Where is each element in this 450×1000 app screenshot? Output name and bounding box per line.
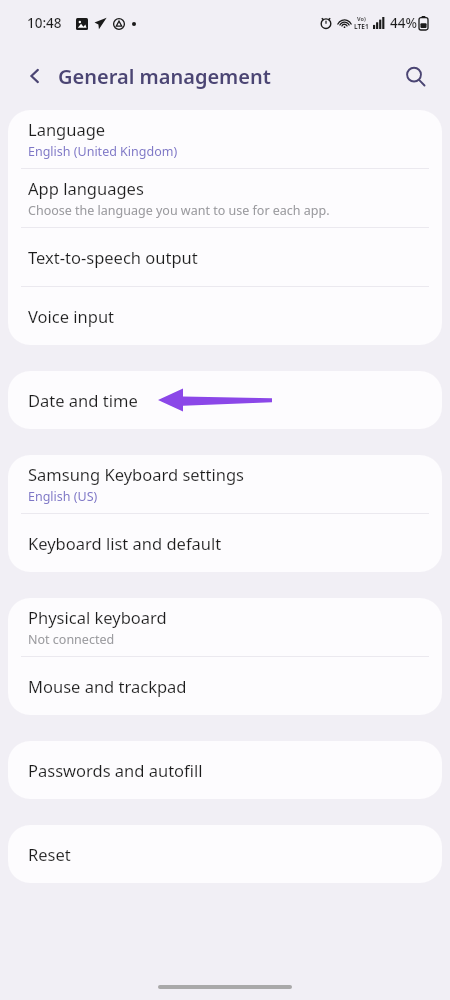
button[interactable]: Back	[14, 55, 56, 97]
button[interactable]: Reset	[8, 825, 442, 883]
staticText: Choose the language you want to use for …	[28, 202, 330, 219]
staticText: Language	[28, 118, 106, 140]
staticText: Keyboard list and default	[28, 532, 222, 554]
button[interactable]: Text-to-speech output	[8, 228, 442, 286]
staticText: Samsung Keyboard settings	[28, 463, 245, 485]
staticText: Date and time	[28, 389, 138, 411]
staticText: LTE1	[354, 22, 369, 31]
staticText: English (US)	[28, 488, 98, 505]
button[interactable]: Samsung Keyboard settings	[8, 455, 442, 513]
button[interactable]: Keyboard list and default	[8, 514, 442, 572]
button[interactable]: Search	[394, 55, 436, 97]
button[interactable]: Voice input	[8, 287, 442, 345]
staticText: App languages	[28, 177, 144, 199]
staticText: English (United Kingdom)	[28, 143, 178, 160]
staticText: Not connected	[28, 631, 115, 648]
staticText: General management	[58, 63, 271, 90]
button[interactable]: Physical keyboard	[8, 598, 442, 656]
staticText: Reset	[28, 843, 71, 865]
button[interactable]: Passwords and autofill	[8, 741, 442, 799]
staticText: 44%	[390, 14, 417, 32]
staticText: Physical keyboard	[28, 606, 167, 628]
button[interactable]: App languages	[8, 169, 442, 227]
staticText: Text-to-speech output	[28, 246, 198, 268]
button[interactable]: Date and time	[8, 371, 442, 429]
button[interactable]: Language	[8, 110, 442, 168]
staticText: Passwords and autofill	[28, 759, 203, 781]
staticText: Mouse and trackpad	[28, 675, 187, 697]
staticText: Voice input	[28, 305, 115, 327]
button[interactable]: Mouse and trackpad	[8, 657, 442, 715]
staticText: Vo)	[357, 15, 366, 22]
staticText: 10:48	[27, 14, 62, 32]
